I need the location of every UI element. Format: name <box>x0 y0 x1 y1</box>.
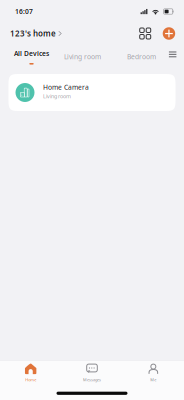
staticText: All Devices <box>14 49 49 58</box>
button[interactable]: All Devices <box>14 46 49 65</box>
staticText: Living room <box>43 93 71 100</box>
button[interactable]: Home <box>0 363 61 382</box>
button[interactable]: Bedroom <box>101 50 156 61</box>
button[interactable]: 123's home <box>10 25 62 42</box>
button[interactable]: Me <box>123 363 184 382</box>
button[interactable]: Grid view <box>138 26 153 41</box>
staticText: Living room <box>64 52 101 61</box>
button[interactable]: Living room <box>49 50 101 61</box>
button[interactable]: Messages <box>61 363 123 382</box>
staticText: 123's home <box>10 28 56 39</box>
staticText: Messages <box>83 377 101 382</box>
button[interactable]: List options <box>163 46 176 57</box>
button[interactable]: Add device <box>153 25 175 42</box>
staticText: Bedroom <box>127 52 156 61</box>
staticText: Home <box>25 377 36 382</box>
staticText: Me <box>150 377 156 382</box>
staticText: Home Camera <box>43 83 89 92</box>
staticText: 16:07 <box>15 7 33 16</box>
button[interactable]: Home Camera <box>8 74 175 111</box>
